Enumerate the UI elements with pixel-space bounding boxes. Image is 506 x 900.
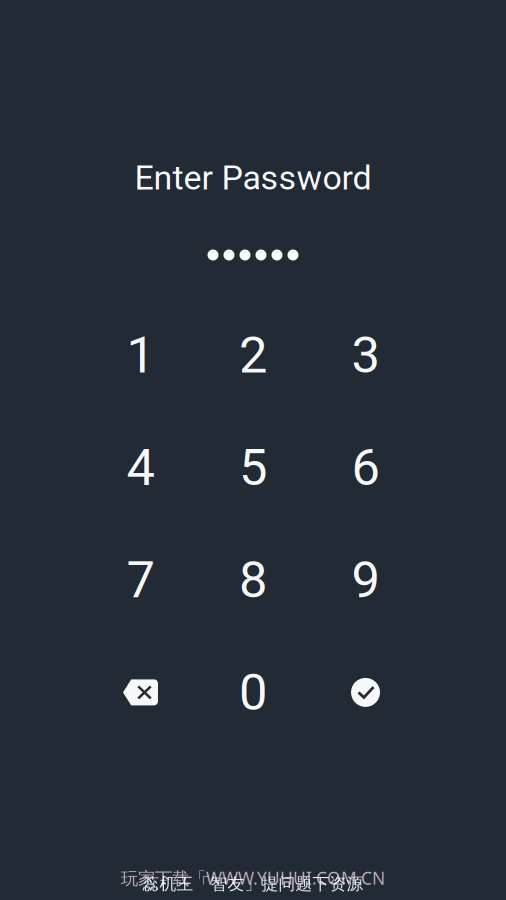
staticText: Enter Password	[134, 158, 371, 198]
staticText: 蕊机王「智友」提问题下资源	[142, 873, 363, 894]
button[interactable]: 0	[197, 636, 309, 749]
staticText: 4	[126, 438, 154, 497]
button[interactable]: 8	[197, 524, 309, 636]
button[interactable]: 5	[197, 411, 309, 524]
button[interactable]: 1	[84, 299, 197, 411]
staticText: 7	[126, 550, 154, 610]
button[interactable]: 9	[309, 524, 422, 636]
staticText: 5	[239, 438, 267, 497]
button[interactable]: 3	[309, 299, 422, 411]
button[interactable]: 2	[197, 299, 309, 411]
button[interactable]: Delete	[84, 636, 197, 749]
staticText: 9	[351, 550, 379, 610]
staticText: 1	[126, 325, 154, 385]
button[interactable]: 4	[84, 411, 197, 524]
staticText: 0	[239, 663, 267, 722]
staticText: 玩家下载「WWW.YUHUI.COM.CN	[121, 866, 385, 890]
button[interactable]: Confirm	[309, 636, 422, 749]
staticText: 3	[351, 325, 379, 385]
staticText: 2	[239, 325, 267, 385]
staticText: 8	[239, 550, 267, 610]
button[interactable]: 6	[309, 411, 422, 524]
staticText: 6	[351, 438, 379, 497]
button[interactable]: 7	[84, 524, 197, 636]
